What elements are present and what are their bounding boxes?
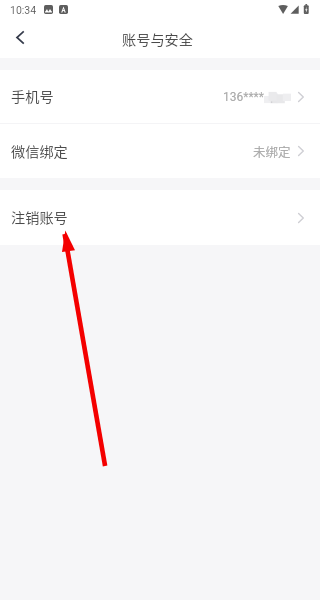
button[interactable]: 微信绑定 — [0, 124, 320, 178]
staticText: 手机号 — [11, 86, 54, 107]
button[interactable]: 返回 — [0, 22, 40, 52]
staticText: 136**** — [223, 90, 264, 104]
button[interactable]: 手机号 — [0, 70, 320, 123]
staticText: 注销账号 — [11, 207, 68, 228]
staticText: 账号与安全 — [122, 29, 193, 50]
button[interactable]: 注销账号 — [0, 190, 320, 245]
staticText: 未绑定 — [253, 142, 291, 160]
staticText: 微信绑定 — [11, 141, 68, 162]
staticText: 10:34 — [10, 4, 37, 16]
